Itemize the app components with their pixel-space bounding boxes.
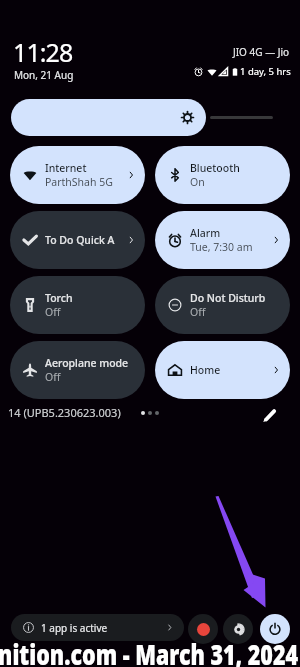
staticText: Mon, 21 Aug	[14, 68, 74, 82]
staticText: Home	[190, 363, 221, 377]
staticText: 14 (UPB5.230623.003)	[8, 405, 121, 420]
button[interactable]: Internet	[10, 146, 145, 204]
button[interactable]: Do Not Disturb	[155, 276, 290, 334]
button[interactable]: Aeroplane mode	[10, 341, 145, 399]
button[interactable]: 1 app is active	[11, 614, 184, 641]
staticText: Off	[45, 370, 61, 384]
staticText: 11:28	[13, 35, 73, 69]
button[interactable]: Power	[260, 614, 290, 644]
button[interactable]: Home	[155, 341, 290, 399]
staticText: 1 day, 5 hrs	[240, 65, 291, 78]
staticText: Off	[190, 305, 206, 319]
button[interactable]: Settings	[223, 614, 253, 644]
staticText: 1 app is active	[41, 621, 108, 635]
staticText: Bluetooth	[190, 161, 240, 175]
staticText: Internet	[45, 161, 87, 175]
staticText: Aeroplane mode	[45, 356, 129, 370]
button[interactable]: Edit tiles	[258, 403, 282, 427]
button[interactable]: Bluetooth	[155, 146, 290, 204]
staticText: On	[190, 175, 205, 189]
staticText: Alarm	[190, 226, 221, 240]
staticText: To Do Quick A	[45, 233, 115, 247]
staticText: Off	[45, 305, 61, 319]
staticText: Tue, 7:30 am	[190, 240, 253, 254]
button[interactable]: Torch	[10, 276, 145, 334]
staticText: Do Not Disturb	[190, 291, 266, 305]
button[interactable]: Screen record	[188, 614, 218, 644]
staticText: nition.com - March 31, 2024	[0, 634, 298, 667]
staticText: ParthShah 5G	[45, 175, 113, 189]
button[interactable]: Brightness	[11, 99, 206, 136]
button[interactable]: To Do Quick A	[10, 211, 145, 269]
staticText: Torch	[45, 291, 73, 305]
button[interactable]: Alarm	[155, 211, 290, 269]
staticText: JIO 4G — Jio	[233, 45, 290, 59]
